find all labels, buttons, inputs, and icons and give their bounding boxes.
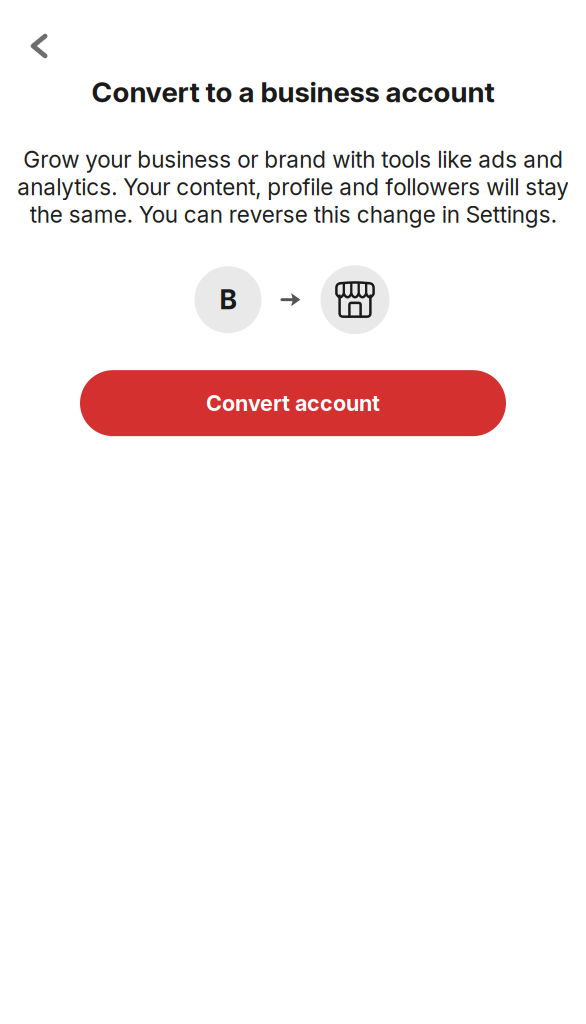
- staticText: Grow your business or brand with tools l…: [17, 146, 569, 228]
- staticText: B: [219, 283, 236, 316]
- button[interactable]: Back: [17, 24, 61, 68]
- button[interactable]: Convert account: [80, 370, 506, 436]
- staticText: Convert to a business account: [91, 75, 494, 109]
- staticText: Convert account: [206, 390, 380, 416]
